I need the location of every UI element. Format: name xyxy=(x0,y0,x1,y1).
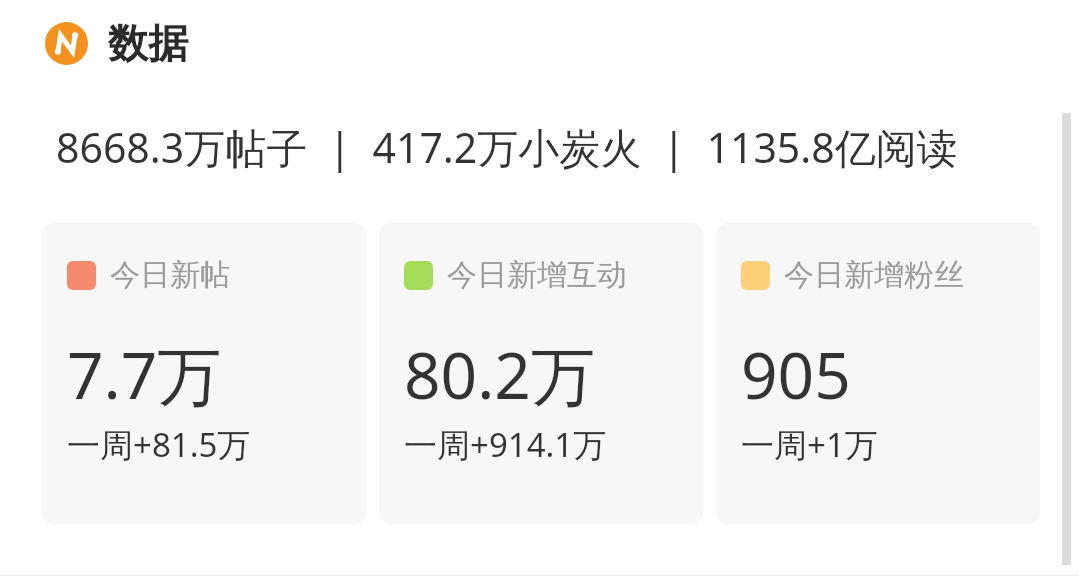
staticText: 一周+1万 xyxy=(741,422,878,467)
staticText: 905 xyxy=(741,331,851,418)
button[interactable]: 今日新增互动 xyxy=(379,223,703,524)
button[interactable]: 今日新帖 xyxy=(42,223,366,524)
staticText: 一周+81.5万 xyxy=(67,422,251,467)
staticText: 数据 xyxy=(108,18,188,68)
staticText: 今日新增互动 xyxy=(447,256,627,294)
staticText: 一周+914.1万 xyxy=(404,422,607,467)
other: App logo xyxy=(45,22,88,65)
staticText: 今日新帖 xyxy=(110,256,230,294)
staticText: 7.7万 xyxy=(67,331,222,418)
button[interactable]: 今日新增粉丝 xyxy=(716,223,1040,524)
staticText: 80.2万 xyxy=(404,331,595,418)
staticText: 8668.3万帖子 | 417.2万小炭火 | 1135.8亿阅读 xyxy=(56,119,958,175)
staticText: 今日新增粉丝 xyxy=(784,256,964,294)
button[interactable]: App logo xyxy=(45,18,188,68)
